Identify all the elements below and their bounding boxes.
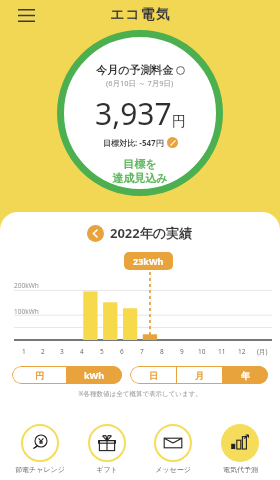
- staticText: 1: [22, 347, 26, 356]
- staticText: 円: [35, 370, 44, 381]
- staticText: 2022年の実績: [110, 224, 193, 242]
- staticText: 11: [218, 347, 226, 356]
- staticText: 月: [195, 370, 204, 381]
- button[interactable]: 電気代予測: [208, 424, 272, 474]
- staticText: (6月10日 ～ 7月9日): [106, 78, 174, 88]
- staticText: 7: [140, 347, 144, 356]
- staticText: (月): [257, 347, 268, 356]
- staticText: 目標を: [57, 157, 223, 171]
- staticText: 12: [238, 347, 246, 356]
- staticText: 節電チャレンジ: [15, 465, 65, 474]
- staticText: 100kWh: [14, 307, 39, 316]
- staticText: 日: [149, 370, 158, 381]
- staticText: エコ電気: [110, 6, 171, 24]
- button[interactable]: メッセージ: [141, 424, 205, 474]
- staticText: 4: [80, 347, 84, 356]
- staticText: 3: [60, 347, 64, 356]
- staticText: ギフト: [96, 465, 118, 474]
- staticText: 5: [100, 347, 104, 356]
- staticText: 8: [160, 347, 164, 356]
- button[interactable]: ギフト: [75, 424, 139, 474]
- staticText: 23kWh: [133, 255, 164, 267]
- staticText: 年: [241, 370, 250, 381]
- staticText: ※各種数値は全て概算で表示しています。: [0, 389, 280, 398]
- button[interactable]: Menu: [14, 3, 38, 27]
- staticText: 目標対比: -547円: [103, 137, 164, 148]
- staticText: メッセージ: [155, 465, 191, 474]
- staticText: 3,937: [95, 93, 172, 134]
- staticText: 円: [172, 113, 186, 131]
- button[interactable]: Edit target: [167, 137, 178, 148]
- button[interactable]: 年: [223, 366, 268, 384]
- button[interactable]: 月: [177, 366, 222, 384]
- button[interactable]: Previous year: [87, 225, 104, 242]
- staticText: 今月の予測料金: [96, 63, 174, 77]
- button[interactable]: 円: [12, 366, 66, 384]
- button[interactable]: kWh: [67, 366, 122, 384]
- staticText: 200kWh: [14, 281, 39, 290]
- staticText: 2: [41, 347, 45, 356]
- staticText: 6: [120, 347, 124, 356]
- staticText: 9: [180, 347, 184, 356]
- button[interactable]: 節電チャレンジ: [8, 424, 72, 474]
- button[interactable]: 日: [130, 366, 176, 384]
- staticText: kWh: [84, 369, 105, 381]
- staticText: 10: [198, 347, 206, 356]
- staticText: 達成見込み: [57, 171, 223, 185]
- staticText: 電気代予測: [223, 465, 258, 474]
